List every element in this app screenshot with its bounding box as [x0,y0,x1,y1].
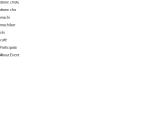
staticText: drone chofu [0,0,19,4]
staticText: machi [0,15,10,20]
staticText: About Event [0,53,19,57]
staticText: cafe [0,38,7,42]
staticText: drone cho [0,7,16,12]
staticText: machibar [0,23,15,27]
staticText: Participate [0,45,17,50]
staticText: ski [0,30,5,35]
